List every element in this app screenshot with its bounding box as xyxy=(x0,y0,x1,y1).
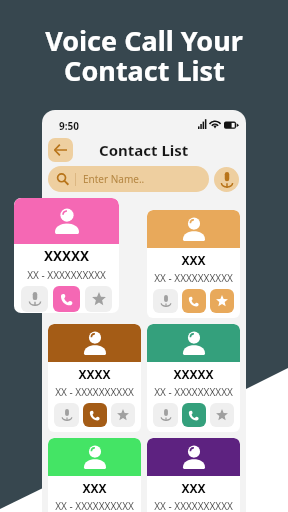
button[interactable]: XXX xyxy=(48,438,141,512)
staticText: XXXX xyxy=(48,366,141,382)
button[interactable]: Voice xyxy=(153,403,178,427)
button[interactable]: Back xyxy=(48,138,73,162)
button[interactable]: Voice search xyxy=(214,167,239,192)
staticText: Contact List xyxy=(99,140,189,160)
staticText: XXXXX xyxy=(14,247,119,265)
button[interactable]: XXX xyxy=(147,210,240,318)
staticText: XXXXX xyxy=(147,366,240,382)
button[interactable]: Voice xyxy=(21,286,48,312)
staticText: XX - XXXXXXXXXX xyxy=(147,499,240,512)
button[interactable]: Enter Name.. xyxy=(48,166,209,192)
button[interactable]: XXX xyxy=(147,438,240,512)
button[interactable]: Favourite xyxy=(210,289,234,313)
button[interactable]: Voice xyxy=(153,289,178,313)
staticText: XX - XXXXXXXXXX xyxy=(147,385,240,399)
staticText: XXX xyxy=(147,480,240,496)
staticText: XX - XXXXXXXXXX xyxy=(14,268,119,282)
button[interactable]: XXXX xyxy=(48,324,141,432)
staticText: Enter Name.. xyxy=(83,172,145,186)
staticText: XXX xyxy=(48,480,141,496)
button[interactable]: Favourite xyxy=(111,403,135,427)
button[interactable]: XXXXX xyxy=(147,324,240,432)
button[interactable]: Call xyxy=(53,286,80,312)
button[interactable]: Call xyxy=(182,403,206,427)
button[interactable]: Voice xyxy=(54,403,79,427)
staticText: 9:50 xyxy=(59,119,79,133)
button[interactable]: Favourite xyxy=(210,403,234,427)
button[interactable]: Call xyxy=(182,289,206,313)
staticText: XX - XXXXXXXXXX xyxy=(48,499,141,512)
button[interactable]: Favourite xyxy=(85,286,112,312)
staticText: XX - XXXXXXXXXX xyxy=(147,271,240,285)
button[interactable]: XXXXX xyxy=(14,198,119,313)
staticText: Contact List xyxy=(64,52,225,89)
staticText: XXX xyxy=(147,252,240,268)
staticText: Voice Call Your xyxy=(45,22,243,59)
staticText: XX - XXXXXXXXXX xyxy=(48,385,141,399)
button[interactable]: Call xyxy=(83,403,107,427)
